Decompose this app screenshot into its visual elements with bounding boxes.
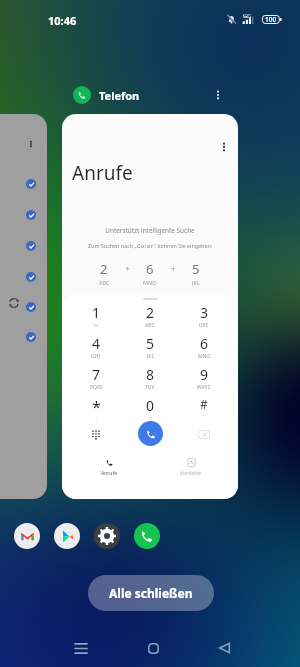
- staticText: Kontakte: [180, 470, 202, 477]
- button[interactable]: Keypad: [86, 424, 106, 444]
- button[interactable]: [0, 114, 47, 499]
- button[interactable]: 5: [127, 334, 173, 362]
- staticText: Alle schließen: [109, 585, 193, 601]
- staticText: 2: [100, 260, 108, 278]
- staticText: o: [147, 242, 151, 249]
- button[interactable]: Settings: [94, 523, 120, 549]
- button[interactable]: Alle schließen: [88, 575, 214, 611]
- staticText: 8: [146, 365, 155, 384]
- button[interactable]: Back: [208, 632, 240, 664]
- staticText: JKL: [147, 353, 155, 360]
- staticText: 10:46: [48, 13, 77, 28]
- staticText: Telefon: [99, 88, 140, 103]
- button[interactable]: More options: [213, 136, 235, 158]
- button[interactable]: More options: [62, 114, 238, 499]
- button[interactable]: Kontakte: [162, 458, 220, 477]
- button[interactable]: 8: [127, 365, 173, 393]
- staticText: TUV: [145, 384, 155, 391]
- button[interactable]: Recent apps: [65, 632, 97, 664]
- staticText: +: [149, 415, 152, 422]
- button[interactable]: 7: [73, 365, 119, 393]
- staticText: 0: [146, 396, 155, 415]
- staticText: WXYZ: [197, 384, 211, 391]
- button[interactable]: Anrufe: [80, 458, 138, 477]
- button[interactable]: 0: [127, 396, 173, 424]
- staticText: ·: [96, 418, 98, 424]
- staticText: 6: [200, 334, 209, 353]
- button[interactable]: 3: [181, 303, 227, 331]
- staticText: GHI: [91, 353, 101, 360]
- staticText: " können Sie eingeben:: [154, 242, 213, 249]
- staticText: MNO: [143, 279, 157, 286]
- button[interactable]: 6: [181, 334, 227, 362]
- staticText: l: [145, 242, 147, 249]
- staticText: 5: [146, 334, 155, 353]
- staticText: 100: [265, 15, 277, 24]
- staticText: C: [137, 242, 141, 249]
- staticText: #: [200, 396, 208, 412]
- staticText: ABC: [99, 279, 110, 286]
- staticText: ABC: [145, 322, 155, 329]
- staticText: 2: [146, 303, 155, 322]
- staticText: DEF: [199, 322, 209, 329]
- staticText: Anrufe: [72, 160, 133, 186]
- staticText: o: [141, 242, 145, 249]
- staticText: Anrufe: [101, 470, 117, 477]
- staticText: +: [171, 263, 176, 274]
- button[interactable]: #: [181, 396, 227, 424]
- button[interactable]: 1: [73, 303, 119, 331]
- staticText: 4: [92, 334, 101, 353]
- staticText: Unterstützt intelligente Suche: [62, 226, 238, 235]
- button[interactable]: 9: [181, 365, 227, 393]
- staticText: Zum Suchen nach „: [88, 242, 137, 249]
- button[interactable]: Call: [138, 421, 163, 446]
- staticText: ∞: [94, 322, 99, 328]
- button[interactable]: *: [73, 396, 119, 424]
- staticText: PQRS: [90, 384, 103, 391]
- staticText: *: [92, 396, 101, 418]
- button[interactable]: More options: [208, 85, 228, 105]
- staticText: 3: [200, 303, 209, 322]
- button[interactable]: Home: [137, 632, 169, 664]
- button[interactable]: Backspace: [193, 424, 213, 444]
- staticText: +: [125, 263, 130, 274]
- staticText: JKL: [192, 279, 200, 286]
- staticText: 5: [192, 260, 200, 278]
- staticText: 6: [146, 260, 154, 278]
- staticText: 7: [92, 365, 101, 384]
- staticText: r: [151, 242, 154, 249]
- staticText: ·: [203, 412, 205, 419]
- staticText: MNO: [198, 353, 211, 360]
- button[interactable]: Play Store: [54, 523, 80, 549]
- staticText: 1: [92, 303, 101, 322]
- button[interactable]: 2: [127, 303, 173, 331]
- button[interactable]: 4: [73, 334, 119, 362]
- staticText: 9: [200, 365, 209, 384]
- button[interactable]: Phone: [134, 523, 160, 549]
- button[interactable]: Gmail: [14, 523, 40, 549]
